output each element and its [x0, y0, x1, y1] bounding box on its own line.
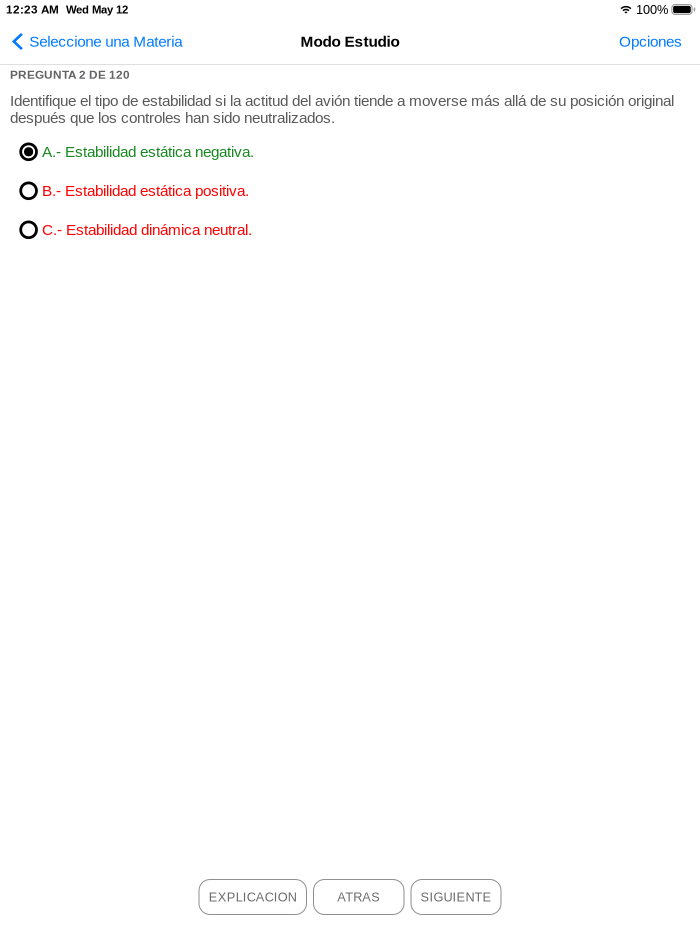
button[interactable]: EXPLICACION	[198, 879, 307, 915]
staticText: 100%	[636, 2, 668, 17]
button[interactable]: A.- Estabilidad estática negativa.	[0, 132, 700, 171]
staticText: Wed May 12	[66, 3, 128, 16]
button[interactable]: SIGUIENTE	[410, 879, 501, 915]
button[interactable]: B.- Estabilidad estática positiva.	[0, 171, 700, 210]
staticText: Modo Estudio	[300, 33, 399, 50]
staticText: SIGUIENTE	[420, 890, 491, 904]
staticText: B.- Estabilidad estática positiva.	[42, 182, 249, 199]
button[interactable]: C.- Estabilidad dinámica neutral.	[0, 210, 700, 249]
staticText: PREGUNTA 2 DE 120	[10, 68, 130, 81]
button[interactable]: Seleccione una Materia	[0, 19, 190, 64]
staticText: 12:23 AM	[6, 3, 59, 16]
staticText: Seleccione una Materia	[29, 33, 182, 50]
button[interactable]: ATRAS	[313, 879, 404, 915]
staticText: Identifique el tipo de estabilidad si la…	[10, 92, 674, 126]
staticText: C.- Estabilidad dinámica neutral.	[42, 221, 252, 238]
staticText: Opciones	[619, 33, 682, 50]
staticText: EXPLICACION	[209, 890, 297, 904]
staticText: ATRAS	[337, 890, 380, 904]
staticText: A.- Estabilidad estática negativa.	[42, 143, 254, 160]
button[interactable]: Opciones	[610, 19, 691, 64]
